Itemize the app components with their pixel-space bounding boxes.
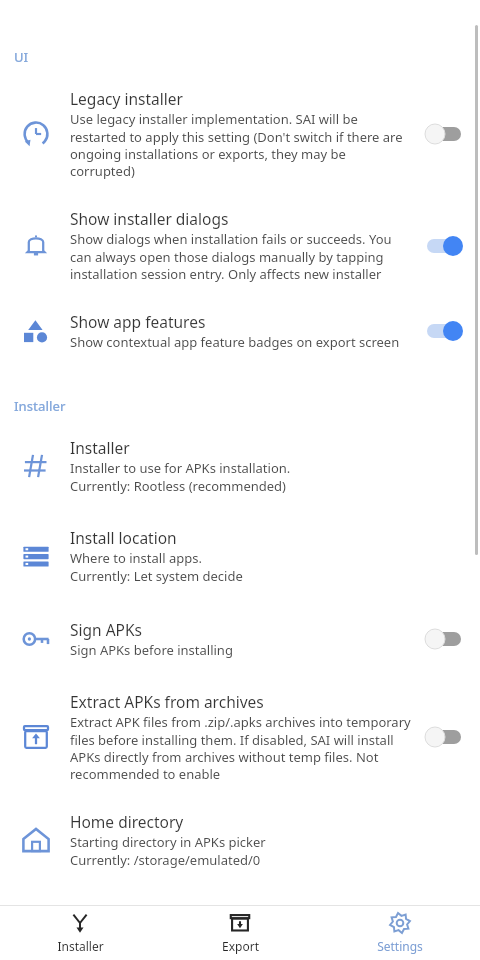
staticText: Install location [70, 527, 177, 548]
staticText: Legacy installer [70, 88, 183, 109]
staticText: UI [14, 48, 29, 66]
staticText: Where to install apps. Currently: Let sy… [70, 549, 243, 585]
staticText: Export [222, 938, 259, 954]
button[interactable]: Home directory [0, 811, 480, 869]
button[interactable]: Toggle off [422, 623, 466, 655]
staticText: Extract APKs from archives [70, 691, 264, 712]
staticText: Installer [70, 437, 130, 458]
staticText: Extract APK files from .zip/.apks archiv… [70, 713, 414, 783]
staticText: Sign APKs before installing [70, 641, 233, 659]
button[interactable]: Toggle off [422, 721, 466, 753]
button[interactable]: Extract APKs from archives [0, 691, 480, 783]
staticText: Use legacy installer implementation. SAI… [70, 110, 414, 180]
staticText: Show installer dialogs [70, 208, 229, 229]
button[interactable]: Show installer dialogs [0, 208, 480, 283]
staticText: Starting directory in APKs picker Curren… [70, 833, 266, 869]
staticText: Installer to use for APKs installation. … [70, 459, 291, 495]
staticText: Show dialogs when installation fails or … [70, 230, 414, 283]
staticText: Settings [377, 938, 423, 954]
button[interactable]: Export [160, 906, 320, 960]
staticText: Sign APKs [70, 619, 142, 640]
button[interactable]: Installer [0, 437, 480, 495]
button[interactable]: Toggle on [422, 230, 466, 262]
button[interactable]: Installer [0, 906, 160, 960]
button[interactable]: Settings [320, 906, 480, 960]
staticText: Home directory [70, 811, 184, 832]
staticText: Show app features [70, 311, 206, 332]
button[interactable]: Install location [0, 527, 480, 585]
staticText: Installer [14, 397, 66, 415]
button[interactable]: Legacy installer [0, 88, 480, 180]
button[interactable]: Show app features [0, 309, 480, 353]
staticText: Installer [57, 938, 104, 954]
button[interactable]: Toggle off [422, 118, 466, 150]
button[interactable]: Sign APKs [0, 617, 480, 661]
button[interactable]: Toggle on [422, 315, 466, 347]
staticText: Show contextual app feature badges on ex… [70, 333, 400, 351]
